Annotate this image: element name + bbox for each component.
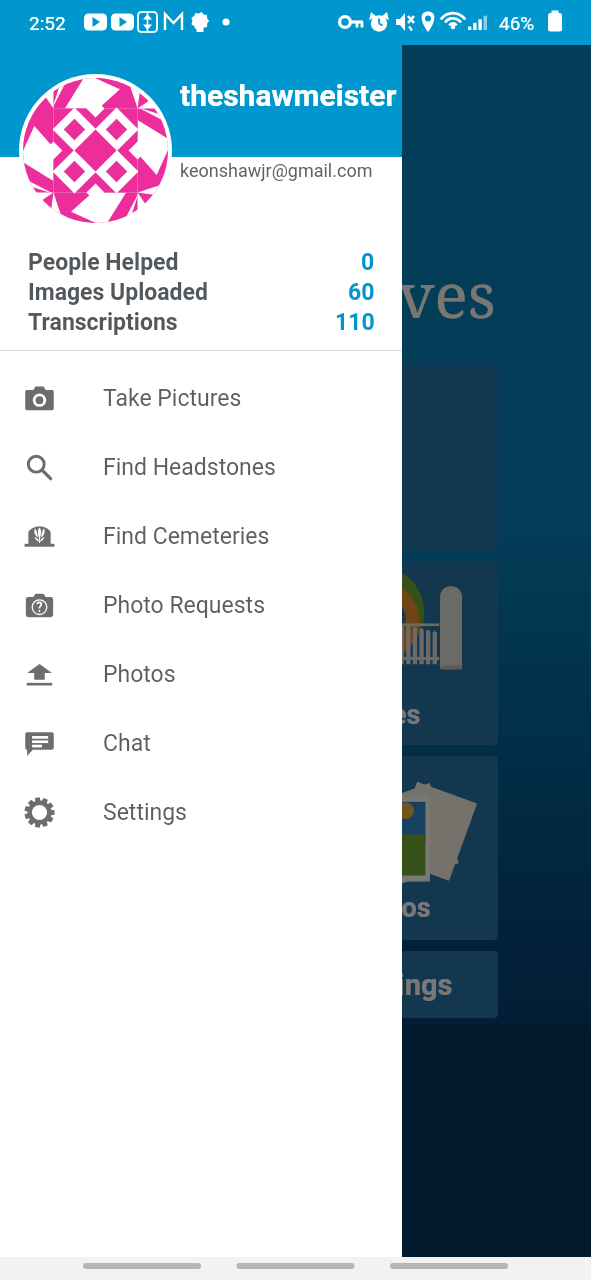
staticText: 46% [499,12,535,34]
button[interactable]: Photos [0,640,402,709]
button[interactable]: Photos [226,756,498,940]
button[interactable]: Chat [0,709,402,778]
button[interactable]: Settings [0,778,402,847]
button[interactable]: Find Cemeteries [226,561,498,745]
staticText: Photos [103,661,176,688]
button[interactable]: Find Headstones [0,433,402,502]
staticText: Transcriptions [28,309,178,336]
staticText: Settings [344,968,453,1002]
staticText: People Helped [28,249,179,276]
button[interactable]: Find Cemeteries [0,502,402,571]
staticText: Find Headstones [103,454,276,481]
staticText: 60 [348,279,375,306]
staticText: Photos [345,892,431,924]
button[interactable]: Photo Requests [0,571,402,640]
staticText: Find Cemeteries [226,699,421,731]
staticText: 110 [335,309,375,336]
staticText: Find Cemeteries [103,523,270,550]
staticText: Take Pictures [103,385,242,412]
button[interactable] [226,366,498,549]
staticText: Photo Requests [103,592,265,619]
staticText: Chat [103,730,151,757]
staticText: 2:52 [29,12,66,34]
staticText: theshawmeister [180,78,412,113]
button[interactable]: Take Pictures [0,364,402,433]
staticText: keonshawjr@gmail.com [180,160,373,181]
staticText: BillionGraves [97,252,496,336]
button[interactable]: Settings [226,951,498,1018]
staticText: Images Uploaded [28,279,208,306]
staticText: Settings [103,799,187,826]
staticText: 0 [361,249,375,276]
